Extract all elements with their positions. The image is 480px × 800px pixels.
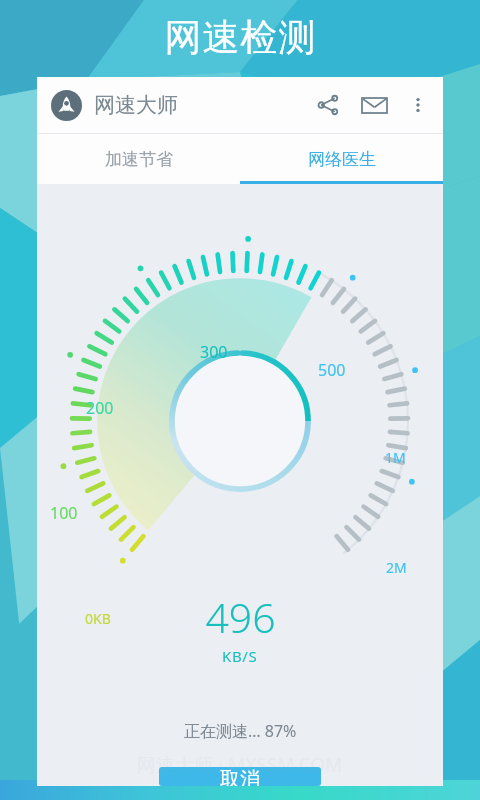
staticText: 100 <box>50 502 78 524</box>
staticText: 网络医生 <box>308 149 376 170</box>
staticText: 1M <box>385 448 406 467</box>
staticText: 正在测速… 87% <box>184 720 297 742</box>
staticText: 加速节省 <box>105 149 173 170</box>
button[interactable]: 网络医生 <box>240 134 443 184</box>
button[interactable]: Share <box>305 82 351 128</box>
staticText: 网速大师 <box>94 92 178 118</box>
staticText: 0KB <box>85 609 111 628</box>
staticText: 网速大师 · MXSSM.COM <box>137 752 343 778</box>
staticText: 200 <box>86 397 114 419</box>
staticText: 496 <box>205 589 276 645</box>
staticText: 2M <box>386 558 407 577</box>
button[interactable]: 取消 <box>159 767 321 786</box>
button[interactable]: More options <box>397 84 439 126</box>
button[interactable]: 加速节省 <box>37 134 240 184</box>
button[interactable]: App icon <box>51 90 82 121</box>
staticText: 300 <box>200 341 228 363</box>
staticText: 500 <box>318 359 346 381</box>
staticText: KB/S <box>222 646 258 666</box>
staticText: 取消 <box>220 767 260 786</box>
button[interactable]: Mail <box>351 82 397 128</box>
staticText: 网速检测 <box>164 14 316 61</box>
